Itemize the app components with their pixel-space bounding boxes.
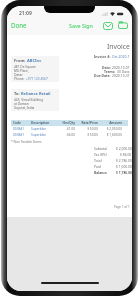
staticText: 445, Vinod Building: [14, 98, 43, 102]
staticText: $ 1,786.00: [116, 170, 132, 174]
staticText: 481 De Square: [14, 65, 36, 69]
staticText: Paid: [94, 164, 101, 168]
staticText: Reliance Retail: [21, 91, 51, 96]
staticText: Description: [31, 121, 59, 125]
staticText: Balance: [94, 170, 107, 174]
button[interactable]: Sign: [81, 20, 94, 31]
staticText: $ 86.00: [120, 152, 132, 156]
staticText: Qatar.: [14, 73, 23, 77]
staticText: Code: [13, 121, 31, 125]
staticText: 41.00: [59, 127, 75, 131]
staticText: 0038#1: [13, 127, 31, 131]
staticText: $ 2,786.00: [116, 158, 132, 162]
staticText: 2020-10-31: [112, 73, 130, 77]
staticText: 2020-10-01: [112, 65, 130, 69]
staticText: $ 50.00: [75, 133, 98, 137]
staticText: Hrs/Qty: [59, 121, 75, 125]
staticText: Rate/Price: [75, 121, 98, 125]
staticText: 21:09: [19, 10, 32, 17]
staticText: Subtotal: [94, 146, 107, 150]
staticText: ABCInc: [27, 58, 42, 63]
staticText: MG Place,: [14, 69, 29, 73]
staticText: To:: [14, 91, 21, 96]
button[interactable]: Save to folder: [118, 21, 128, 29]
staticText: Invoice #:: [94, 54, 112, 59]
staticText: $ 2,000.00: [116, 146, 132, 150]
staticText: 0038#1: [13, 133, 31, 137]
staticText: Phone:: [14, 77, 26, 81]
staticText: Date:: [102, 65, 112, 69]
button[interactable]: Email invoice: [103, 22, 113, 30]
staticText: Superbike: [31, 133, 59, 137]
staticText: at Daman: [14, 102, 29, 106]
staticText: Amount: [98, 121, 122, 125]
staticText: * Non Taxable Items: [11, 140, 42, 144]
staticText: Tax (8%): [94, 152, 107, 156]
staticText: +971 123 4567: [26, 77, 48, 81]
staticText: Total: [94, 158, 102, 162]
staticText: $ 50.00: [75, 127, 98, 131]
staticText: Page 1 of 1: [114, 205, 130, 209]
staticText: From:: [14, 58, 27, 63]
staticText: Terms:: [104, 69, 117, 73]
button[interactable]: Done: [10, 19, 28, 31]
staticText: $ 2,050.00: [98, 127, 122, 131]
button[interactable]: Save: [68, 20, 82, 31]
staticText: Gujarat, India: [14, 106, 35, 110]
staticText: 46.00: [59, 133, 75, 137]
staticText: $ 1,000.00: [116, 164, 132, 168]
staticText: 30 Days: [117, 69, 130, 73]
staticText: Invoice: [107, 42, 130, 51]
staticText: Due Date:: [94, 73, 112, 77]
staticText: Oct-2020-1: [112, 54, 130, 59]
staticText: $ 1,600.00: [98, 133, 122, 137]
staticText: Superbike: [31, 127, 59, 131]
